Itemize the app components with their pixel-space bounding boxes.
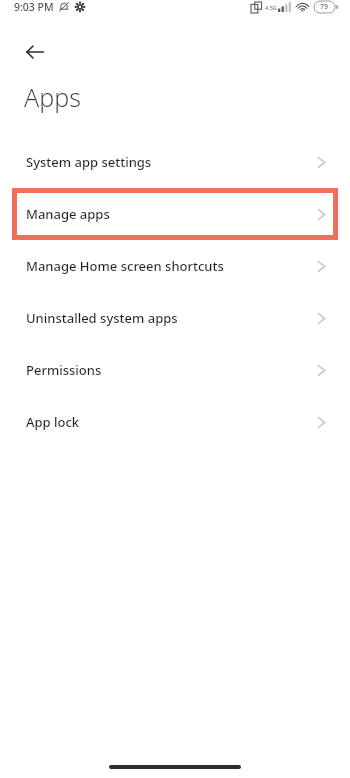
staticText: Apps <box>24 80 81 114</box>
staticText: Permissions <box>26 361 102 379</box>
staticText: 4.5G <box>265 4 277 11</box>
button[interactable]: Uninstalled system apps <box>0 292 350 344</box>
staticText: Manage apps <box>26 205 110 223</box>
button[interactable]: Manage apps <box>17 193 333 235</box>
button[interactable]: Permissions <box>0 344 350 396</box>
staticText: App lock <box>26 413 80 431</box>
staticText: 79 <box>320 2 329 12</box>
button[interactable]: System app settings <box>0 136 350 188</box>
staticText: Manage Home screen shortcuts <box>26 257 224 275</box>
staticText: System app settings <box>26 153 152 171</box>
staticText: 9:03 PM <box>14 0 54 14</box>
staticText: Uninstalled system apps <box>26 309 178 327</box>
button[interactable]: App lock <box>0 396 350 448</box>
button[interactable]: Back <box>14 34 56 70</box>
button[interactable]: Manage Home screen shortcuts <box>0 240 350 292</box>
